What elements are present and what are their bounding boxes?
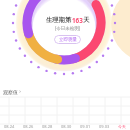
button[interactable]: 观察值 [3, 88, 21, 95]
staticText: 08.26 [23, 124, 34, 129]
staticText: 立即测量 [59, 37, 77, 43]
staticText: 今天 [118, 124, 126, 129]
button[interactable]: 立即测量 [54, 35, 81, 44]
staticText: 08.28 [42, 124, 53, 129]
staticText: › [18, 88, 21, 95]
staticText: 09.03 [99, 124, 110, 129]
staticText: 08.30 [61, 124, 72, 129]
staticText: 观察值 [3, 89, 18, 95]
staticText: (今日未检测) [55, 25, 81, 31]
staticText: 08.24 [4, 124, 15, 129]
staticText: 天 [83, 16, 90, 24]
staticText: 生理期第 [46, 16, 72, 24]
staticText: 163 [72, 16, 83, 25]
staticText: 09.01 [80, 124, 91, 129]
